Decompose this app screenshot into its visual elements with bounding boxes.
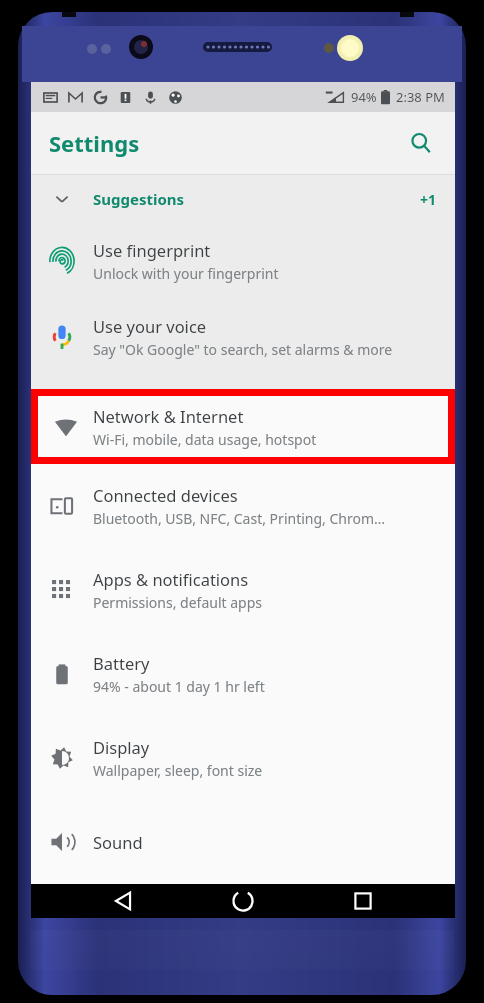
staticText: Use your voice [93,315,207,337]
staticText: Battery [93,652,150,674]
button[interactable]: Apps & notifications [31,548,455,632]
staticText: Apps & notifications [93,568,249,590]
button[interactable]: Settings [49,128,140,158]
staticText: Display [93,736,150,758]
staticText: Sound [93,831,143,853]
button[interactable]: Battery [31,632,455,716]
staticText: Use fingerprint [93,239,211,261]
staticText: Suggestions [93,189,185,209]
button[interactable]: Search [403,125,439,161]
button[interactable]: Suggestions [31,175,455,223]
staticText: Wallpaper, sleep, font size [93,761,263,780]
staticText: Permissions, default apps [93,593,263,612]
staticText: Settings [49,128,140,158]
staticText: 94% - about 1 day 1 hr left [93,677,265,696]
staticText: +1 [420,190,437,209]
staticText: Network & Internet [93,405,244,427]
button[interactable]: Use fingerprint [31,223,455,299]
staticText: Bluetooth, USB, NFC, Cast, Printing, Chr… [93,509,386,528]
button[interactable]: Home [215,884,271,918]
staticText: 2:38 PM [396,88,445,106]
staticText: Connected devices [93,484,238,506]
staticText: 94% [351,88,377,106]
staticText: Unlock with your fingerprint [93,264,279,283]
button[interactable]: Recents [335,884,391,918]
staticText: Wi-Fi, mobile, data usage, hotspot [93,430,317,449]
button[interactable]: Display [31,716,455,800]
button[interactable]: Use your voice [31,299,455,375]
button[interactable]: Sound [31,800,455,884]
button[interactable]: Network & Internet [38,396,448,457]
button[interactable]: Back [95,884,151,918]
staticText: Say "Ok Google" to search, set alarms & … [93,340,393,359]
button[interactable]: Connected devices [31,464,455,548]
